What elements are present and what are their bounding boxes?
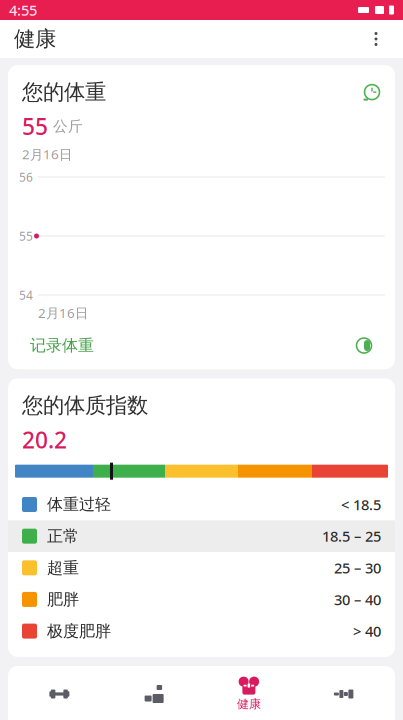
staticText: 56 [19, 169, 33, 185]
staticText: < 18.5 [341, 495, 381, 514]
staticText: 2月16日 [22, 145, 72, 163]
staticText: 20.2 [22, 425, 67, 455]
staticText: 健康 [14, 26, 56, 52]
staticText: 您的体重 [22, 79, 106, 105]
staticText: 公斤 [53, 117, 83, 135]
button[interactable]: 肥胖 [8, 584, 395, 615]
staticText: 55 [19, 228, 33, 244]
staticText: 健康 [237, 697, 261, 711]
staticText: 25 – 30 [334, 558, 381, 578]
button[interactable]: 正常 [8, 520, 395, 552]
button[interactable]: 记录体重 [30, 336, 94, 355]
button[interactable]: 目标 [107, 671, 202, 717]
staticText: 极度肥胖 [47, 621, 111, 641]
staticText: 您的体质指数 [22, 392, 148, 419]
button[interactable]: 超重 [8, 552, 395, 584]
staticText: 肥胖 [47, 590, 79, 609]
button[interactable]: 体重过轻 [8, 489, 395, 520]
staticText: 54 [19, 287, 33, 303]
staticText: 健康信息 [22, 680, 106, 706]
button[interactable]: 训练 [12, 671, 107, 717]
button[interactable]: 极度肥胖 [8, 615, 395, 647]
button[interactable]: 统计 [296, 671, 391, 717]
staticText: 55 [22, 111, 48, 141]
staticText: 4:55 [9, 0, 37, 20]
staticText: > 40 [353, 621, 381, 641]
button[interactable]: 健康 [201, 671, 296, 717]
button[interactable]: 历史记录 [363, 83, 381, 101]
staticText: 30 – 40 [334, 590, 381, 609]
staticText: 记录体重 [30, 336, 94, 355]
button[interactable]: 目标设置 [355, 336, 373, 354]
staticText: 18.5 – 25 [322, 526, 381, 546]
button[interactable]: 更多选项 [363, 26, 389, 52]
staticText: 正常 [47, 526, 79, 546]
staticText: 体重过轻 [47, 495, 111, 514]
staticText: 超重 [47, 558, 79, 578]
staticText: 2月16日 [38, 304, 88, 322]
